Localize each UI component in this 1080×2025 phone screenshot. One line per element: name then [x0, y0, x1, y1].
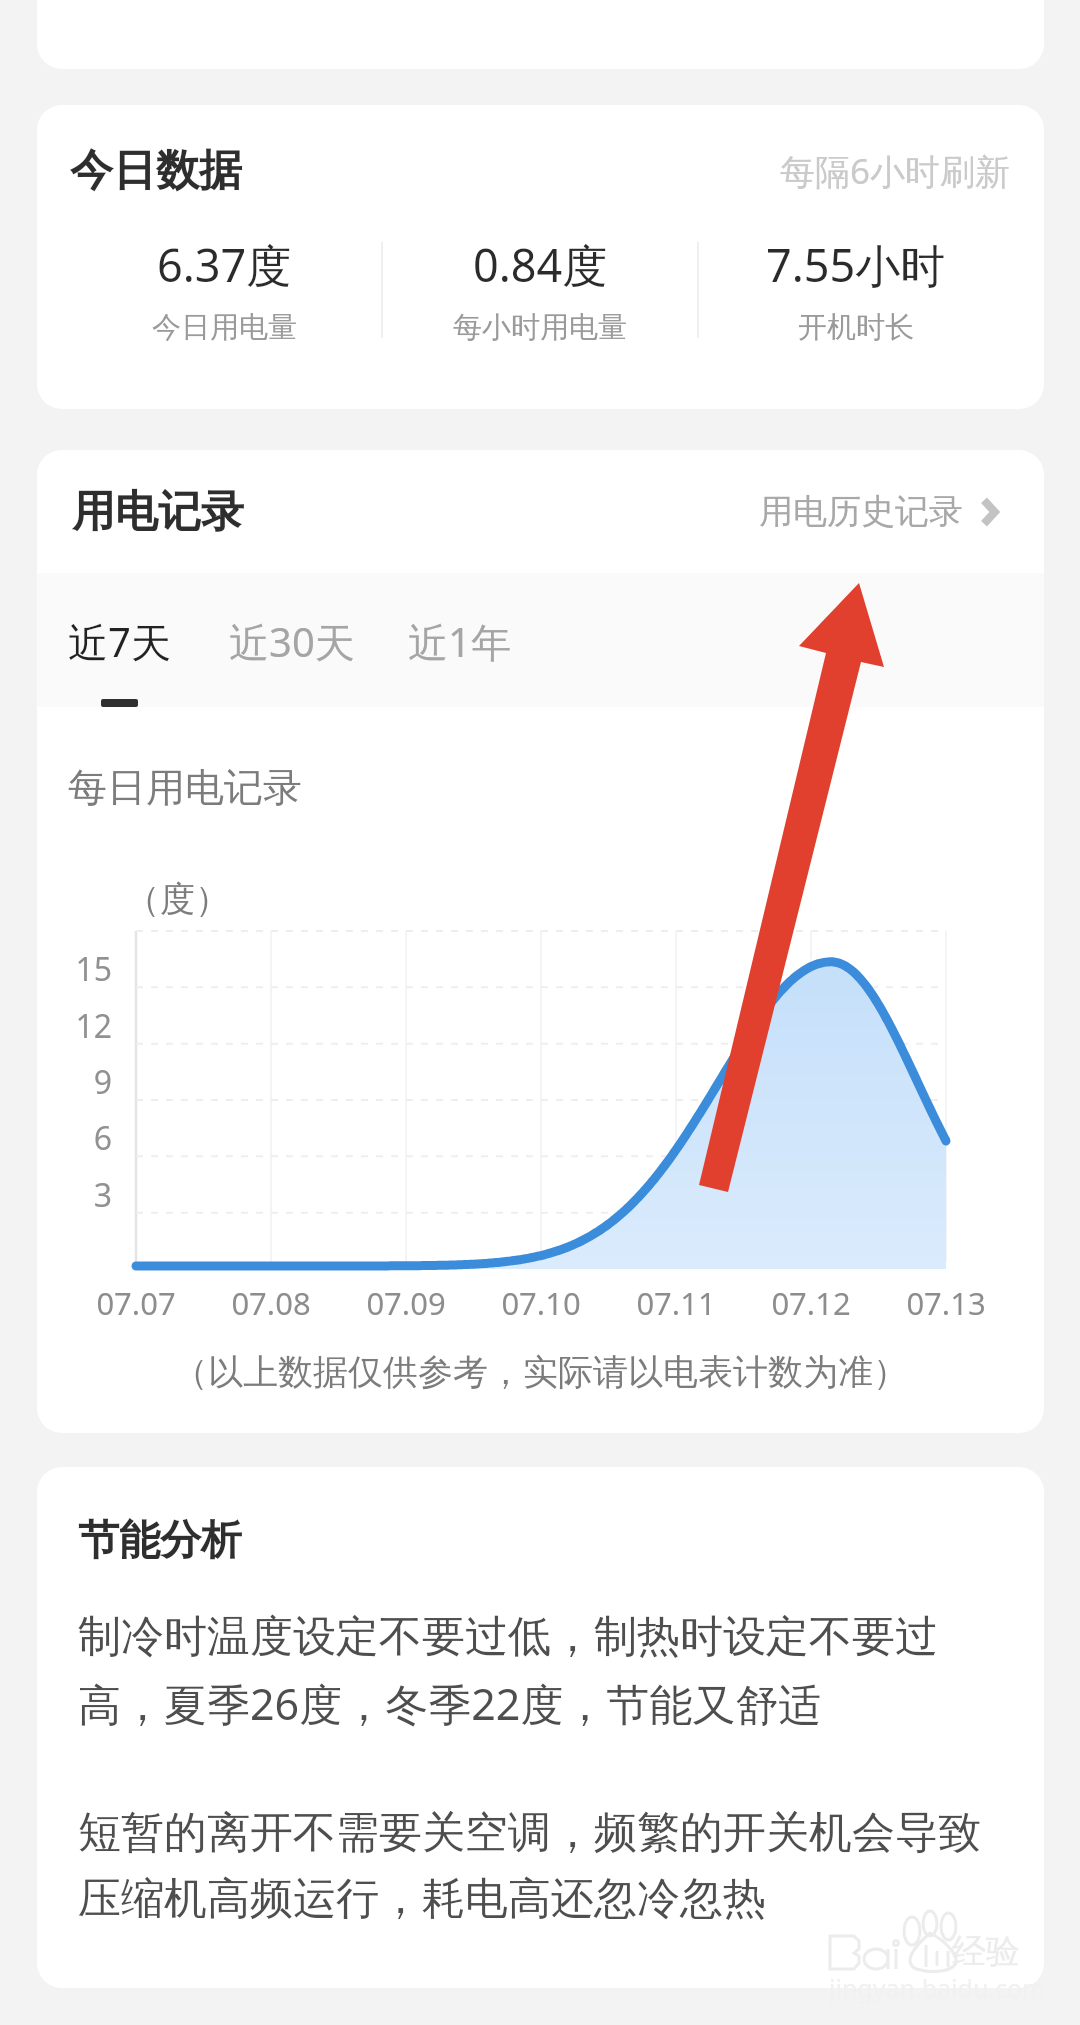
staticText: 07.10: [451, 1282, 631, 1324]
staticText: 今日数据: [70, 144, 242, 198]
staticText: 12: [37, 1004, 112, 1048]
staticText: 每小时用电量: [453, 309, 627, 346]
button[interactable]: 6.37度: [67, 234, 381, 346]
staticText: 用电记录: [72, 485, 244, 539]
staticText: 07.07: [46, 1282, 226, 1324]
staticText: 近7天: [68, 614, 171, 669]
staticText: 0.84度: [473, 234, 608, 295]
staticText: 15: [37, 947, 112, 991]
staticText: 近1年: [408, 614, 511, 669]
staticText: 近30天: [229, 614, 355, 669]
staticText: 开机时长: [798, 309, 914, 346]
staticText: （度）: [125, 877, 230, 921]
button[interactable]: 近1年: [408, 614, 511, 699]
staticText: 制冷时温度设定不要过低，制热时设定不要过 高，夏季26度，冬季22度，节能又舒适: [78, 1610, 938, 1733]
button[interactable]: 用电历史记录: [759, 490, 1005, 533]
button[interactable]: 近7天: [68, 614, 171, 707]
staticText: 每隔6小时刷新: [780, 147, 1011, 195]
staticText: 07.13: [856, 1282, 1036, 1324]
staticText: 今日用电量: [152, 309, 297, 346]
staticText: （以上数据仅供参考，实际请以电表计数为准）: [37, 1350, 1044, 1394]
button[interactable]: 近30天: [229, 614, 355, 699]
staticText: 节能分析: [78, 1515, 242, 1567]
staticText: jingyan.baidu.com: [829, 1971, 1046, 2005]
staticText: 07.08: [181, 1282, 361, 1324]
staticText: 9: [37, 1060, 112, 1104]
staticText: 短暂的离开不需要关空调，频繁的开关机会导致 压缩机高频运行，耗电高还忽冷忽热: [78, 1806, 981, 1926]
staticText: 07.11: [586, 1282, 766, 1324]
staticText: 用电历史记录: [759, 490, 963, 533]
staticText: 6: [37, 1116, 112, 1160]
staticText: 07.09: [316, 1282, 496, 1324]
staticText: 7.55小时: [766, 234, 946, 295]
button[interactable]: 7.55小时: [699, 234, 1013, 346]
staticText: 6.37度: [157, 234, 292, 295]
other: 查看用电历史记录: [975, 497, 1005, 527]
staticText: 经验: [952, 1930, 1020, 1973]
staticText: 07.12: [721, 1282, 901, 1324]
button[interactable]: 0.84度: [383, 234, 697, 346]
staticText: 每日用电记录: [68, 763, 302, 812]
staticText: 3: [37, 1173, 112, 1217]
